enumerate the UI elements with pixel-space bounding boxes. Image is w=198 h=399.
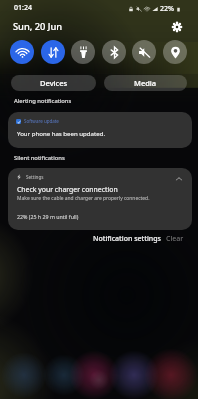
staticText: Media bbox=[134, 78, 157, 88]
staticText: 22% bbox=[160, 4, 174, 14]
staticText: Software update bbox=[24, 118, 59, 124]
button[interactable]: Media bbox=[104, 75, 187, 91]
button[interactable]: Quick setting bbox=[163, 40, 187, 64]
button[interactable]: Settings bbox=[8, 168, 192, 230]
staticText: Alerting notifications bbox=[14, 97, 72, 105]
staticText: Sun, 20 Jun bbox=[13, 20, 63, 33]
staticText: Notification settings bbox=[93, 234, 161, 244]
button[interactable]: Quick setting bbox=[102, 40, 126, 64]
staticText: 22% (25 h 29 m until full) bbox=[17, 213, 79, 220]
button[interactable]: Devices bbox=[11, 75, 96, 91]
staticText: Silent notifications bbox=[14, 154, 65, 162]
button[interactable]: Settings bbox=[169, 19, 184, 34]
staticText: Devices bbox=[40, 78, 68, 88]
staticText: Settings bbox=[26, 174, 44, 180]
staticText: Your phone has been updated. bbox=[17, 129, 106, 137]
button[interactable]: Collapse bbox=[172, 172, 186, 186]
staticText: 01:24 bbox=[14, 3, 32, 13]
button[interactable]: Quick setting bbox=[132, 40, 156, 64]
button[interactable]: Notification settings bbox=[90, 232, 164, 246]
staticText: Make sure the cable and charger are prop… bbox=[17, 195, 150, 202]
staticText: Check your charger connection bbox=[17, 185, 118, 194]
button[interactable]: Clear bbox=[163, 232, 187, 246]
staticText: Clear bbox=[166, 234, 184, 244]
button[interactable]: Quick setting bbox=[71, 40, 95, 64]
button[interactable]: Quick setting bbox=[10, 40, 34, 64]
button[interactable]: Software update bbox=[8, 112, 192, 148]
button[interactable]: Quick setting bbox=[41, 40, 65, 64]
